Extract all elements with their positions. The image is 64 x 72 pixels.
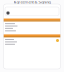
staticText: Agreement & Signing — [13, 0, 50, 5]
